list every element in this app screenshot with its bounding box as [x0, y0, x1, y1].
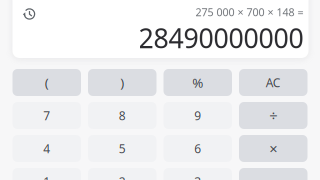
button[interactable]: 7 — [12, 102, 81, 129]
button[interactable]: ÷ — [239, 102, 307, 129]
button[interactable]: 6 — [163, 135, 232, 162]
button[interactable]: 8 — [88, 102, 156, 129]
button[interactable]: 9 — [163, 102, 232, 129]
button[interactable]: 2 — [88, 168, 156, 180]
button[interactable]: AC — [239, 69, 307, 96]
staticText: 8 — [119, 107, 126, 123]
button[interactable]: 5 — [88, 135, 156, 162]
staticText: 7 — [43, 107, 50, 123]
staticText: 4 — [43, 140, 50, 156]
button[interactable]: 1 — [12, 168, 81, 180]
button[interactable]: History — [17, 3, 41, 25]
staticText: 9 — [194, 107, 201, 123]
button[interactable]: % — [163, 69, 232, 96]
button[interactable]: ( — [12, 69, 81, 96]
staticText: 3 — [194, 173, 201, 180]
staticText: 275 000 × 700 × 148 = — [195, 5, 303, 19]
button[interactable]: − — [239, 168, 307, 180]
staticText: ( — [45, 74, 49, 91]
button[interactable]: 4 — [12, 135, 81, 162]
staticText: % — [192, 74, 203, 91]
button[interactable]: 3 — [163, 168, 232, 180]
staticText: 1 — [43, 173, 50, 180]
staticText: AC — [266, 74, 281, 90]
button[interactable]: × — [239, 135, 307, 162]
staticText: 28490000000 — [138, 20, 303, 56]
staticText: 6 — [194, 140, 201, 156]
staticText: 5 — [119, 140, 126, 156]
staticText: ÷ — [269, 106, 277, 125]
staticText: 2 — [119, 173, 126, 180]
staticText: × — [269, 139, 277, 158]
button[interactable]: ) — [88, 69, 156, 96]
staticText: ) — [120, 74, 124, 91]
